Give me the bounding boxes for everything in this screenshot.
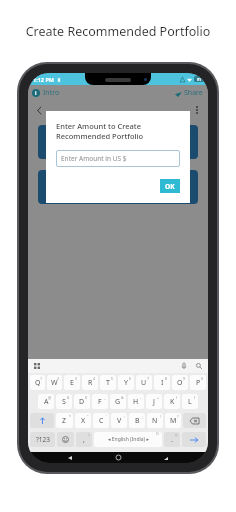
button[interactable]: K: [164, 394, 180, 409]
button[interactable]: J: [146, 394, 162, 409]
button[interactable]: D: [74, 394, 90, 409]
staticText: M: [170, 416, 177, 426]
button[interactable]: Backspace: [183, 413, 206, 428]
other: Share: [175, 90, 182, 97]
staticText: ': [106, 414, 107, 419]
staticText: X: [81, 416, 86, 426]
button[interactable]: Z: [56, 413, 73, 428]
button[interactable]: I: [154, 375, 170, 390]
button[interactable]: L: [182, 394, 198, 409]
button[interactable]: S: [56, 394, 72, 409]
staticText: S: [62, 397, 66, 407]
staticText: K: [170, 397, 175, 407]
staticText: B: [135, 416, 140, 426]
staticText: OK: [165, 182, 175, 191]
staticText: C: [99, 416, 104, 426]
staticText: Y: [124, 378, 128, 388]
staticText: !: [160, 414, 161, 419]
button[interactable]: ?123: [30, 432, 55, 447]
button[interactable]: Share: [175, 88, 203, 98]
staticText: ?123: [36, 435, 50, 444]
button[interactable]: O: [172, 375, 188, 390]
staticText: $: [85, 395, 88, 400]
staticText: -: [140, 395, 142, 400]
button[interactable]: Enter Amount in US $: [56, 150, 180, 167]
button[interactable]: P: [190, 375, 206, 390]
staticText: 0: [201, 376, 204, 381]
staticText: !?: [175, 433, 178, 438]
button[interactable]: R: [82, 375, 98, 390]
staticText: 7: [147, 376, 150, 381]
button[interactable]: My Portfolios: [38, 170, 198, 204]
staticText: ;: [142, 414, 143, 419]
staticText: (: [176, 395, 178, 400]
staticText: 91: [197, 77, 202, 82]
button[interactable]: Shift: [30, 413, 54, 428]
button[interactable]: [38, 125, 198, 159]
button[interactable]: M: [165, 413, 181, 428]
staticText: #: [67, 395, 70, 400]
staticText: R: [88, 378, 93, 388]
button[interactable]: Recents: [160, 452, 172, 463]
staticText: Z: [62, 416, 67, 426]
other: Toolbox: [34, 363, 40, 369]
button[interactable]: Enter: [182, 432, 206, 447]
button[interactable]: G: [110, 394, 126, 409]
button[interactable]: OK: [160, 179, 180, 193]
button[interactable]: V: [111, 413, 127, 428]
staticText: D: [79, 397, 85, 407]
button[interactable]: X: [75, 413, 91, 428]
button[interactable]: .: [164, 432, 180, 447]
button[interactable]: i: [32, 88, 60, 98]
button[interactable]: F: [92, 394, 108, 409]
button[interactable]: N: [147, 413, 163, 428]
staticText: ◂ English (India) ▸: [108, 436, 149, 443]
staticText: A: [44, 397, 49, 407]
button[interactable]: Home: [112, 452, 124, 463]
staticText: ): [194, 395, 196, 400]
button[interactable]: More options: [191, 104, 203, 116]
button[interactable]: Space: [94, 432, 162, 447]
button[interactable]: ,: [76, 432, 92, 447]
other: Voice input: [181, 363, 187, 369]
staticText: ?: [177, 414, 179, 419]
staticText: I: [161, 378, 164, 388]
button[interactable]: Back: [33, 104, 45, 116]
staticText: J: [153, 397, 155, 407]
staticText: P: [196, 378, 201, 388]
staticText: O: [177, 378, 183, 388]
button[interactable]: B: [129, 413, 145, 428]
staticText: W: [51, 378, 58, 388]
staticText: :: [124, 414, 125, 419]
staticText: N: [152, 416, 158, 426]
staticText: 5: [111, 376, 114, 381]
staticText: Q: [35, 378, 41, 388]
staticText: L: [188, 397, 192, 407]
button[interactable]: Back: [64, 452, 76, 463]
button[interactable]: U: [136, 375, 152, 390]
button[interactable]: Y: [118, 375, 134, 390]
button[interactable]: Emoji: [57, 432, 74, 447]
staticText: 3: [75, 376, 78, 381]
staticText: 1:12 PM: [33, 76, 55, 83]
button[interactable]: C: [93, 413, 109, 428]
staticText: Enter Amount to Create Recommended Portf…: [56, 121, 180, 141]
button[interactable]: W: [47, 375, 62, 390]
staticText: °: [88, 433, 90, 438]
staticText: 9: [183, 376, 186, 381]
button[interactable]: Q: [30, 375, 45, 390]
staticText: T: [106, 378, 110, 388]
staticText: E: [70, 378, 74, 388]
staticText: 1: [40, 376, 43, 381]
staticText: 8: [165, 376, 168, 381]
button[interactable]: T: [100, 375, 116, 390]
staticText: V: [117, 416, 122, 426]
staticText: G: [115, 397, 121, 407]
button[interactable]: E: [64, 375, 80, 390]
button[interactable]: H: [128, 394, 144, 409]
staticText: ☷: [156, 432, 160, 436]
button[interactable]: A: [38, 394, 54, 409]
staticText: F: [98, 397, 102, 407]
staticText: .: [171, 435, 173, 445]
